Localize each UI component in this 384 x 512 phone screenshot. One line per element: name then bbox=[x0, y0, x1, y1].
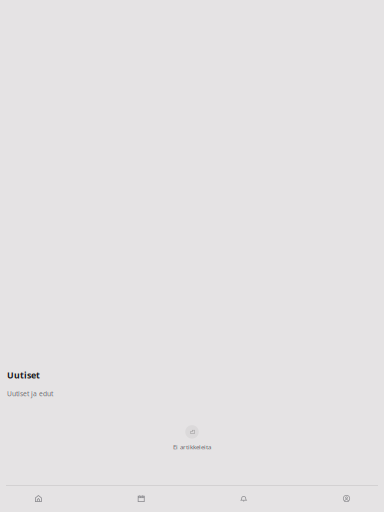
staticText: Uutiset ja edut bbox=[7, 389, 53, 398]
button[interactable]: Oma tili bbox=[294, 486, 384, 512]
button[interactable]: Etusivu bbox=[0, 486, 89, 512]
button[interactable]: Kalenteri bbox=[89, 486, 192, 512]
button[interactable]: Ilmoitukset bbox=[192, 486, 294, 512]
staticText: Uutiset bbox=[7, 369, 40, 381]
staticText: Ei artikkeleita bbox=[173, 443, 211, 451]
